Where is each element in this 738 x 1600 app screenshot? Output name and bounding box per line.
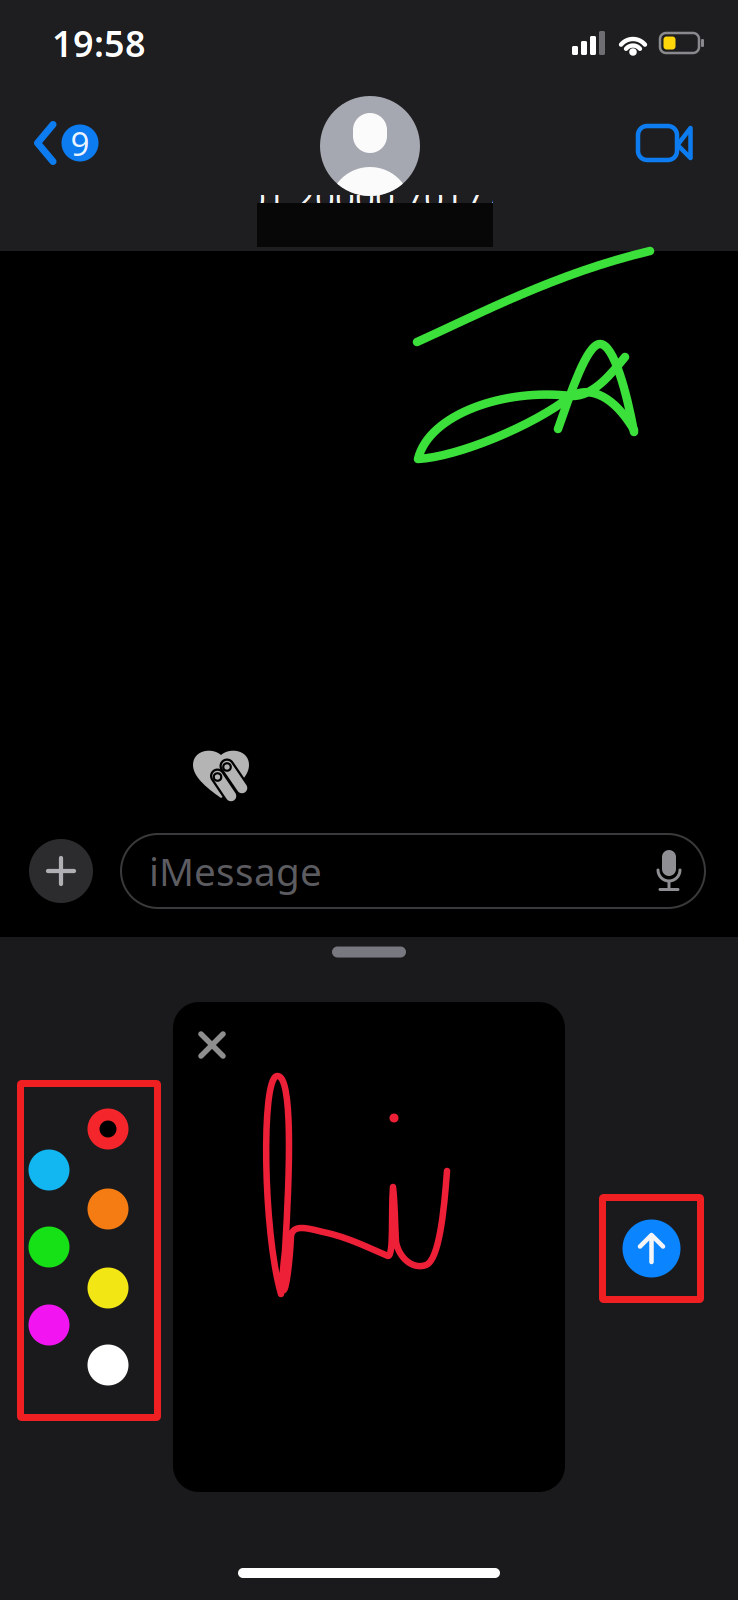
button[interactable]: Close — [178, 1011, 246, 1079]
button[interactable]: Apps — [25, 835, 97, 907]
button[interactable]: Colour swatch — [20, 1141, 78, 1199]
button[interactable]: Send — [602, 1197, 700, 1299]
button[interactable]: Colour swatch — [79, 1180, 137, 1238]
button[interactable]: Back, 9 conversations — [15, 101, 116, 185]
button[interactable]: FaceTime video call — [619, 105, 711, 181]
button[interactable]: Colour swatch — [79, 1336, 137, 1394]
staticText: iMessage — [149, 845, 322, 897]
button[interactable]: iMessage text field — [121, 834, 705, 908]
button[interactable]: Colour swatch — [20, 1296, 78, 1354]
button[interactable]: Colour swatch — [79, 1259, 137, 1317]
button[interactable]: Colour swatch — [79, 1100, 137, 1158]
staticText: 19:58 — [52, 19, 146, 67]
staticText: 9 — [70, 121, 89, 165]
staticText: 01 20000 70177 — [246, 174, 504, 220]
button[interactable]: Colour swatch — [20, 1218, 78, 1276]
